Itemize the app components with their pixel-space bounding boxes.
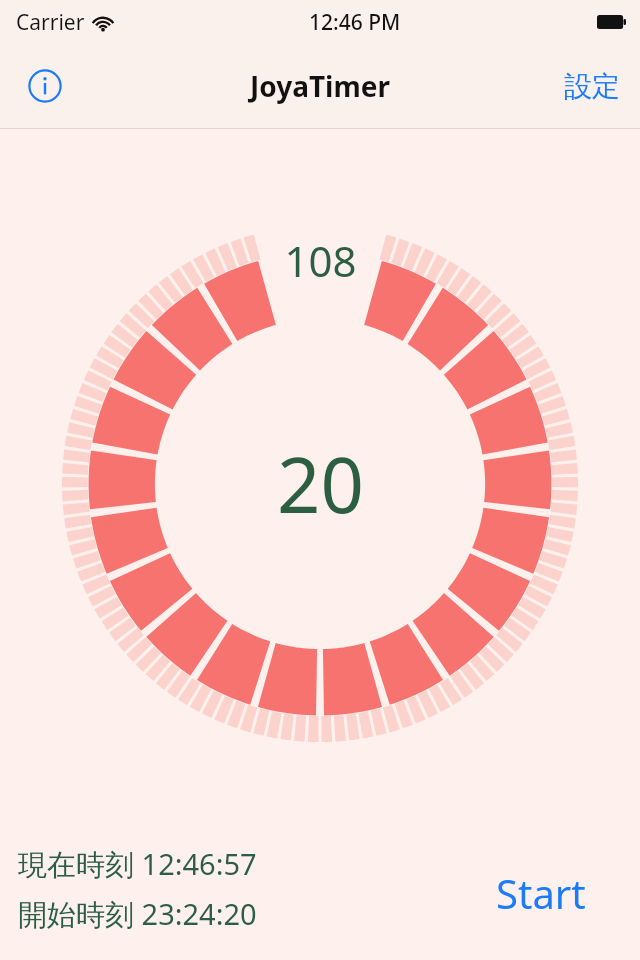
staticText: 現在時刻 12:46:57	[18, 844, 257, 884]
staticText: 108	[284, 232, 357, 289]
staticText: 開始時刻 23:24:20	[18, 894, 257, 934]
button[interactable]: Start	[486, 860, 596, 926]
staticText: Carrier	[16, 8, 85, 37]
staticText: Start	[496, 866, 586, 920]
staticText: 20	[277, 432, 364, 536]
staticText: 設定	[564, 69, 620, 104]
button[interactable]: Info	[18, 59, 72, 113]
staticText: JoyaTimer	[250, 67, 391, 105]
button[interactable]: 設定	[558, 61, 626, 112]
staticText: 12:46 PM	[309, 8, 401, 37]
